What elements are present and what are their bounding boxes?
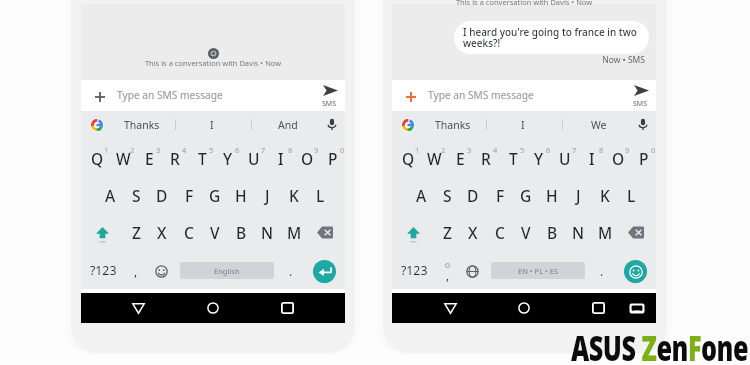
button[interactable]: X: [460, 213, 486, 251]
button[interactable]: Home: [507, 293, 541, 323]
button[interactable]: Enter: [313, 260, 336, 283]
button[interactable]: J: [565, 176, 591, 214]
button[interactable]: Send SMS: [628, 84, 656, 107]
button[interactable]: Q: [395, 139, 421, 177]
staticText: H: [546, 185, 558, 206]
button[interactable]: .: [589, 252, 615, 290]
button[interactable]: F: [487, 176, 513, 214]
button[interactable]: ,: [123, 252, 149, 290]
button[interactable]: Send SMS: [317, 84, 345, 107]
button[interactable]: Shift: [400, 216, 426, 254]
button[interactable]: Voice input: [630, 111, 656, 138]
button[interactable]: I: [579, 139, 605, 177]
button[interactable]: M: [281, 213, 307, 251]
button[interactable]: Change language: [459, 252, 485, 290]
button[interactable]: V: [202, 213, 228, 251]
button[interactable]: Z: [434, 213, 460, 251]
button[interactable]: Add attachment: [398, 81, 424, 112]
button[interactable]: W: [421, 139, 447, 177]
button[interactable]: C: [176, 213, 202, 251]
button[interactable]: C: [487, 213, 513, 251]
button[interactable]: P: [320, 139, 346, 177]
button[interactable]: A: [408, 176, 434, 214]
button[interactable]: V: [513, 213, 539, 251]
button[interactable]: ,: [434, 252, 460, 290]
button[interactable]: P: [631, 139, 657, 177]
staticText: 3: [156, 145, 161, 155]
button[interactable]: We: [577, 111, 621, 138]
staticText: 2: [441, 145, 446, 155]
staticText: ,: [446, 267, 450, 283]
button[interactable]: S: [434, 176, 460, 214]
button[interactable]: D: [460, 176, 486, 214]
button[interactable]: O: [294, 139, 320, 177]
button[interactable]: H: [539, 176, 565, 214]
button[interactable]: E: [136, 139, 162, 177]
button[interactable]: D: [149, 176, 175, 214]
button[interactable]: T: [500, 139, 526, 177]
button[interactable]: Space: [180, 262, 274, 279]
button[interactable]: H: [228, 176, 254, 214]
button[interactable]: Emoji: [148, 252, 174, 290]
button[interactable]: O: [605, 139, 631, 177]
button[interactable]: W: [110, 139, 136, 177]
button[interactable]: X: [149, 213, 175, 251]
button[interactable]: Emoji: [624, 260, 647, 283]
button[interactable]: Backspace: [312, 213, 338, 251]
button[interactable]: U: [552, 139, 578, 177]
staticText: I heard you're going to france in two we…: [463, 25, 640, 50]
button[interactable]: K: [281, 176, 307, 214]
button[interactable]: Thanks: [424, 111, 482, 138]
button[interactable]: I: [503, 111, 543, 138]
button[interactable]: Voice input: [319, 111, 345, 138]
button[interactable]: Back: [433, 293, 467, 323]
button[interactable]: U: [241, 139, 267, 177]
button[interactable]: Space: [491, 262, 585, 279]
button[interactable]: Home: [196, 293, 230, 323]
button[interactable]: T: [189, 139, 215, 177]
button[interactable]: A: [97, 176, 123, 214]
button[interactable]: N: [565, 213, 591, 251]
button[interactable]: Recent apps: [581, 293, 615, 323]
button[interactable]: L: [307, 176, 333, 214]
button[interactable]: And: [266, 111, 310, 138]
button[interactable]: G: [513, 176, 539, 214]
button[interactable]: E: [447, 139, 473, 177]
button[interactable]: B: [539, 213, 565, 251]
staticText: English: [214, 266, 240, 276]
button[interactable]: Y: [215, 139, 241, 177]
button[interactable]: Google search: [394, 111, 422, 138]
button[interactable]: Back: [121, 293, 155, 323]
staticText: Q: [91, 148, 104, 169]
button[interactable]: Google search: [83, 111, 111, 138]
button[interactable]: G: [202, 176, 228, 214]
button[interactable]: Thanks: [113, 111, 171, 138]
staticText: 0: [340, 145, 345, 155]
button[interactable]: Switch keyboard: [620, 293, 654, 323]
button[interactable]: Backspace: [623, 213, 649, 251]
button[interactable]: Q: [84, 139, 110, 177]
button[interactable]: B: [228, 213, 254, 251]
button[interactable]: R: [473, 139, 499, 177]
button[interactable]: F: [176, 176, 202, 214]
button[interactable]: Y: [526, 139, 552, 177]
button[interactable]: I: [268, 139, 294, 177]
button[interactable]: L: [618, 176, 644, 214]
button[interactable]: N: [254, 213, 280, 251]
button[interactable]: .: [278, 252, 304, 290]
button[interactable]: Z: [123, 213, 149, 251]
button[interactable]: Recent apps: [270, 293, 304, 323]
button[interactable]: Shift: [89, 216, 115, 254]
button[interactable]: J: [254, 176, 280, 214]
button[interactable]: M: [592, 213, 618, 251]
button[interactable]: Add attachment: [87, 81, 113, 112]
button[interactable]: ?123: [396, 251, 432, 289]
button[interactable]: I: [192, 111, 232, 138]
button[interactable]: ?123: [85, 251, 121, 289]
button[interactable]: R: [162, 139, 188, 177]
button[interactable]: S: [123, 176, 149, 214]
staticText: Z: [443, 222, 452, 243]
staticText: A: [416, 185, 427, 206]
staticText: 5: [520, 145, 525, 155]
button[interactable]: K: [592, 176, 618, 214]
